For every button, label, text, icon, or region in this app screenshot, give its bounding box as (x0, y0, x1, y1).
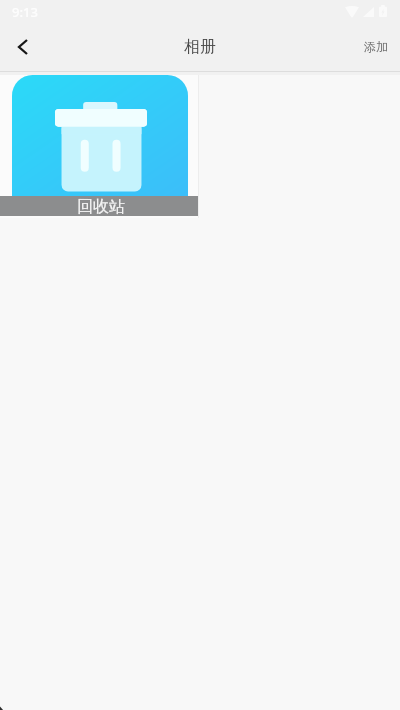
staticText: 9:13 (12, 3, 38, 21)
button[interactable]: 添加 (350, 25, 400, 71)
staticText: 添加 (364, 39, 388, 54)
staticText: 相册 (184, 37, 216, 57)
staticText: 回收站 (77, 197, 125, 217)
button[interactable]: Back (0, 26, 44, 70)
button[interactable]: 回收站 (0, 75, 199, 218)
